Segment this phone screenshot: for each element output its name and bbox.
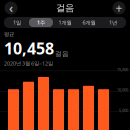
button[interactable]: 1개월 (53, 18, 77, 27)
staticText: 평균 (4, 31, 14, 38)
staticText: 1년 (109, 19, 117, 26)
staticText: 1일 (13, 19, 21, 26)
staticText: 10,458 (4, 38, 54, 59)
button[interactable]: 6개월 (77, 18, 101, 27)
button[interactable]: 1년 (101, 18, 125, 27)
staticText: 6개월 (82, 19, 95, 26)
button[interactable]: 1일 (5, 18, 29, 27)
staticText: 2020년 3월 6일–12일 (4, 60, 53, 67)
staticText: 걸음 (55, 50, 69, 58)
staticText: ‹ (9, 0, 13, 16)
staticText: 1주 (37, 19, 45, 26)
staticText: 걸음 (56, 2, 74, 14)
staticText: + (115, 0, 122, 16)
staticText: 15,000 (117, 67, 128, 72)
button[interactable]: 1주 (29, 18, 53, 27)
staticText: 10,000 (117, 87, 128, 92)
button[interactable]: 추가 (111, 0, 127, 16)
staticText: 1개월 (58, 19, 71, 26)
staticText: 5,000 (119, 107, 128, 113)
button[interactable]: 뒤로 (3, 0, 19, 16)
